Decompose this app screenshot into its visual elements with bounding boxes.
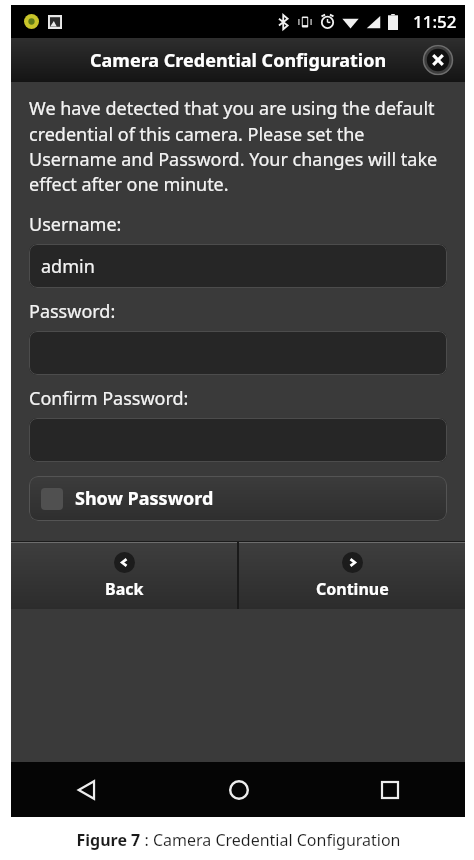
staticText: Figure 7 : Camera Credential Configurati… <box>76 829 401 851</box>
staticText: Password: <box>29 299 116 324</box>
staticText: Continue <box>316 578 389 600</box>
button[interactable]: admin <box>29 244 447 288</box>
button[interactable]: Show Password <box>29 476 447 521</box>
staticText: Camera Credential Configuration <box>90 48 387 73</box>
button[interactable]: Recent apps <box>314 762 465 817</box>
staticText: Back <box>105 578 144 600</box>
button[interactable] <box>29 418 447 462</box>
staticText: admin <box>41 254 95 279</box>
button[interactable]: Back <box>11 762 163 817</box>
staticText: We have detected that you are using the … <box>29 96 447 196</box>
button[interactable]: Home <box>163 762 314 817</box>
staticText: Show Password <box>75 486 214 511</box>
staticText: Confirm Password: <box>29 386 189 411</box>
button[interactable] <box>29 331 447 375</box>
button[interactable]: Back <box>11 542 237 609</box>
staticText: 11:52 <box>413 10 457 33</box>
staticText: Username: <box>29 212 122 237</box>
button[interactable]: Close <box>421 43 455 77</box>
button[interactable]: Continue <box>239 542 465 609</box>
